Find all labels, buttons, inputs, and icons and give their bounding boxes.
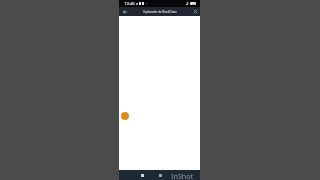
staticText: Explorador de BlockChain bbox=[143, 10, 177, 14]
button[interactable]: Home bbox=[153, 170, 167, 180]
staticText: 86 bbox=[192, 2, 195, 5]
staticText: ··· bbox=[145, 1, 149, 7]
staticText: 13:46 bbox=[124, 1, 135, 7]
button[interactable]: Close bbox=[191, 7, 200, 16]
staticText: InShot bbox=[171, 171, 194, 180]
button[interactable]: Back bbox=[135, 170, 149, 180]
button[interactable]: Back bbox=[119, 7, 130, 16]
